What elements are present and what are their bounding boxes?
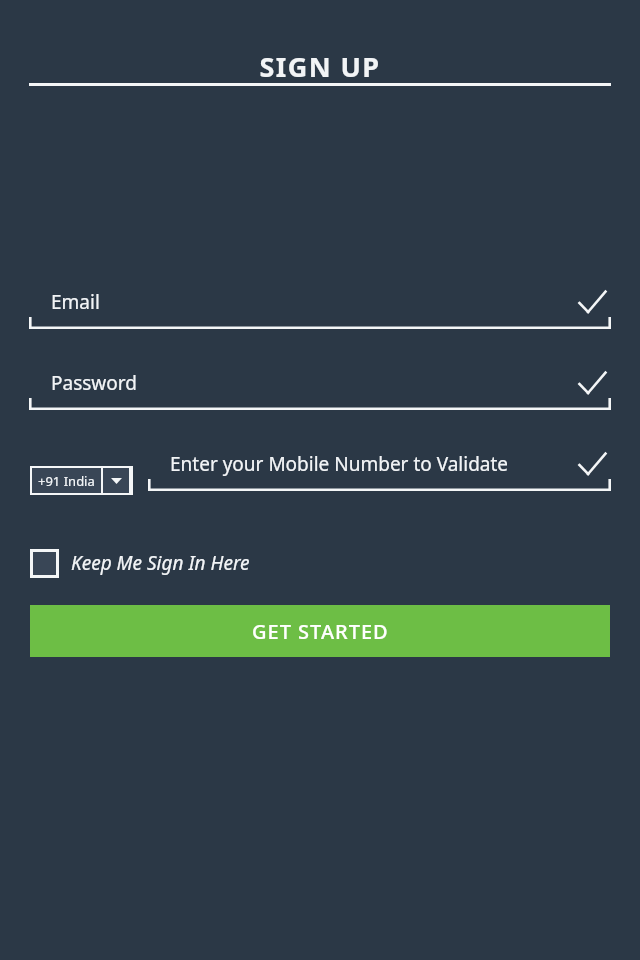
button[interactable]: GET STARTED	[30, 605, 610, 657]
staticText: GET STARTED	[252, 618, 389, 645]
staticText: Password	[51, 370, 137, 396]
button[interactable]: Email	[29, 289, 611, 329]
staticText: Email	[51, 289, 100, 315]
staticText: Keep Me Sign In Here	[71, 550, 250, 576]
button[interactable]: Select country code	[30, 466, 133, 495]
staticText: Enter your Mobile Number to Validate	[170, 451, 509, 477]
button[interactable]: Password	[29, 370, 611, 410]
button[interactable]: Enter your Mobile Number to Validate	[148, 451, 611, 491]
staticText: +91 India	[38, 472, 95, 490]
staticText: SIGN UP	[0, 48, 640, 82]
button[interactable]: Keep Me Sign In Here	[30, 546, 250, 580]
